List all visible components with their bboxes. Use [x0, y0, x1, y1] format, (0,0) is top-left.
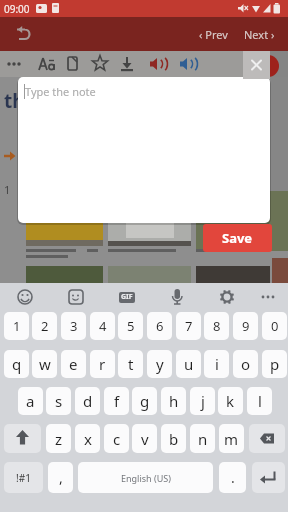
- button[interactable]: [62, 51, 85, 77]
- button[interactable]: 8: [204, 312, 229, 340]
- button[interactable]: [164, 285, 190, 311]
- button[interactable]: [113, 285, 141, 311]
- button[interactable]: [62, 285, 88, 311]
- button[interactable]: o: [233, 350, 258, 378]
- button[interactable]: [35, 51, 59, 77]
- button[interactable]: 7: [176, 312, 201, 340]
- staticText: x: [84, 429, 92, 449]
- staticText: English (US): [121, 472, 171, 484]
- button[interactable]: 9: [233, 312, 258, 340]
- button[interactable]: 0: [262, 312, 287, 340]
- button[interactable]: Type the note: [18, 77, 270, 223]
- button[interactable]: [2, 51, 26, 77]
- staticText: Type the note: [25, 84, 96, 99]
- button[interactable]: 6: [147, 312, 172, 340]
- staticText: 4: [99, 317, 107, 335]
- button[interactable]: [4, 424, 41, 453]
- button[interactable]: i: [204, 350, 229, 378]
- button[interactable]: [214, 285, 240, 311]
- button[interactable]: 5: [118, 312, 143, 340]
- staticText: y: [156, 354, 164, 374]
- button[interactable]: p: [262, 350, 287, 378]
- staticText: .: [231, 468, 235, 487]
- button[interactable]: [115, 51, 139, 77]
- button[interactable]: l: [247, 387, 272, 415]
- staticText: 8: [213, 317, 221, 335]
- button[interactable]: [249, 424, 285, 453]
- button[interactable]: [243, 51, 270, 79]
- button[interactable]: m: [219, 424, 244, 453]
- staticText: Save: [222, 229, 253, 247]
- button[interactable]: c: [104, 424, 129, 453]
- button[interactable]: [12, 285, 38, 311]
- button[interactable]: x: [75, 424, 100, 453]
- button[interactable]: b: [161, 424, 186, 453]
- button[interactable]: f: [104, 387, 129, 415]
- button[interactable]: Save: [203, 224, 272, 252]
- staticText: e: [69, 354, 78, 374]
- button[interactable]: English (US): [78, 462, 213, 493]
- staticText: d: [83, 391, 93, 411]
- button[interactable]: z: [46, 424, 71, 453]
- staticText: m: [224, 429, 239, 449]
- button[interactable]: [252, 462, 285, 493]
- button[interactable]: 3: [61, 312, 86, 340]
- button[interactable]: [145, 51, 171, 77]
- button[interactable]: [88, 51, 112, 77]
- staticText: ,: [59, 468, 63, 487]
- staticText: z: [55, 429, 63, 449]
- staticText: !#1: [16, 471, 31, 485]
- button[interactable]: 2: [32, 312, 57, 340]
- staticText: s: [55, 391, 63, 411]
- staticText: 3: [70, 317, 78, 335]
- button[interactable]: y: [147, 350, 172, 378]
- button[interactable]: Next ›: [238, 22, 280, 46]
- button[interactable]: k: [218, 387, 243, 415]
- staticText: 1: [13, 317, 21, 335]
- button[interactable]: n: [190, 424, 215, 453]
- staticText: w: [39, 354, 51, 374]
- staticText: 9: [242, 317, 250, 335]
- staticText: 2: [41, 317, 49, 335]
- button[interactable]: [252, 285, 280, 311]
- button[interactable]: [175, 51, 201, 77]
- button[interactable]: r: [90, 350, 115, 378]
- staticText: k: [226, 391, 235, 411]
- staticText: n: [198, 429, 208, 449]
- button[interactable]: e: [61, 350, 86, 378]
- button[interactable]: v: [132, 424, 157, 453]
- button[interactable]: 1: [4, 312, 29, 340]
- staticText: Next ›: [244, 27, 275, 42]
- staticText: f: [114, 391, 120, 411]
- staticText: v: [141, 429, 149, 449]
- staticText: 7: [185, 317, 193, 335]
- button[interactable]: ‹ Prev: [193, 22, 233, 46]
- button[interactable]: t: [118, 350, 143, 378]
- button[interactable]: g: [132, 387, 157, 415]
- button[interactable]: a: [18, 387, 43, 415]
- button[interactable]: .: [219, 462, 246, 493]
- button[interactable]: ,: [48, 462, 73, 493]
- staticText: j: [201, 391, 205, 411]
- staticText: p: [270, 354, 280, 374]
- staticText: a: [26, 391, 35, 411]
- staticText: th: [4, 88, 25, 114]
- staticText: c: [113, 429, 121, 449]
- staticText: GIF: [121, 292, 133, 302]
- button[interactable]: q: [4, 350, 29, 378]
- button[interactable]: 4: [90, 312, 115, 340]
- button[interactable]: w: [32, 350, 57, 378]
- button[interactable]: [13, 26, 31, 41]
- staticText: q: [12, 354, 22, 374]
- button[interactable]: h: [161, 387, 186, 415]
- button[interactable]: s: [46, 387, 71, 415]
- staticText: g: [140, 391, 150, 411]
- button[interactable]: !#1: [4, 462, 43, 493]
- button[interactable]: u: [176, 350, 201, 378]
- button[interactable]: j: [190, 387, 215, 415]
- staticText: 09:00: [4, 2, 30, 15]
- button[interactable]: d: [75, 387, 100, 415]
- staticText: 6: [156, 317, 164, 335]
- staticText: u: [184, 354, 194, 374]
- staticText: ‹ Prev: [199, 27, 228, 42]
